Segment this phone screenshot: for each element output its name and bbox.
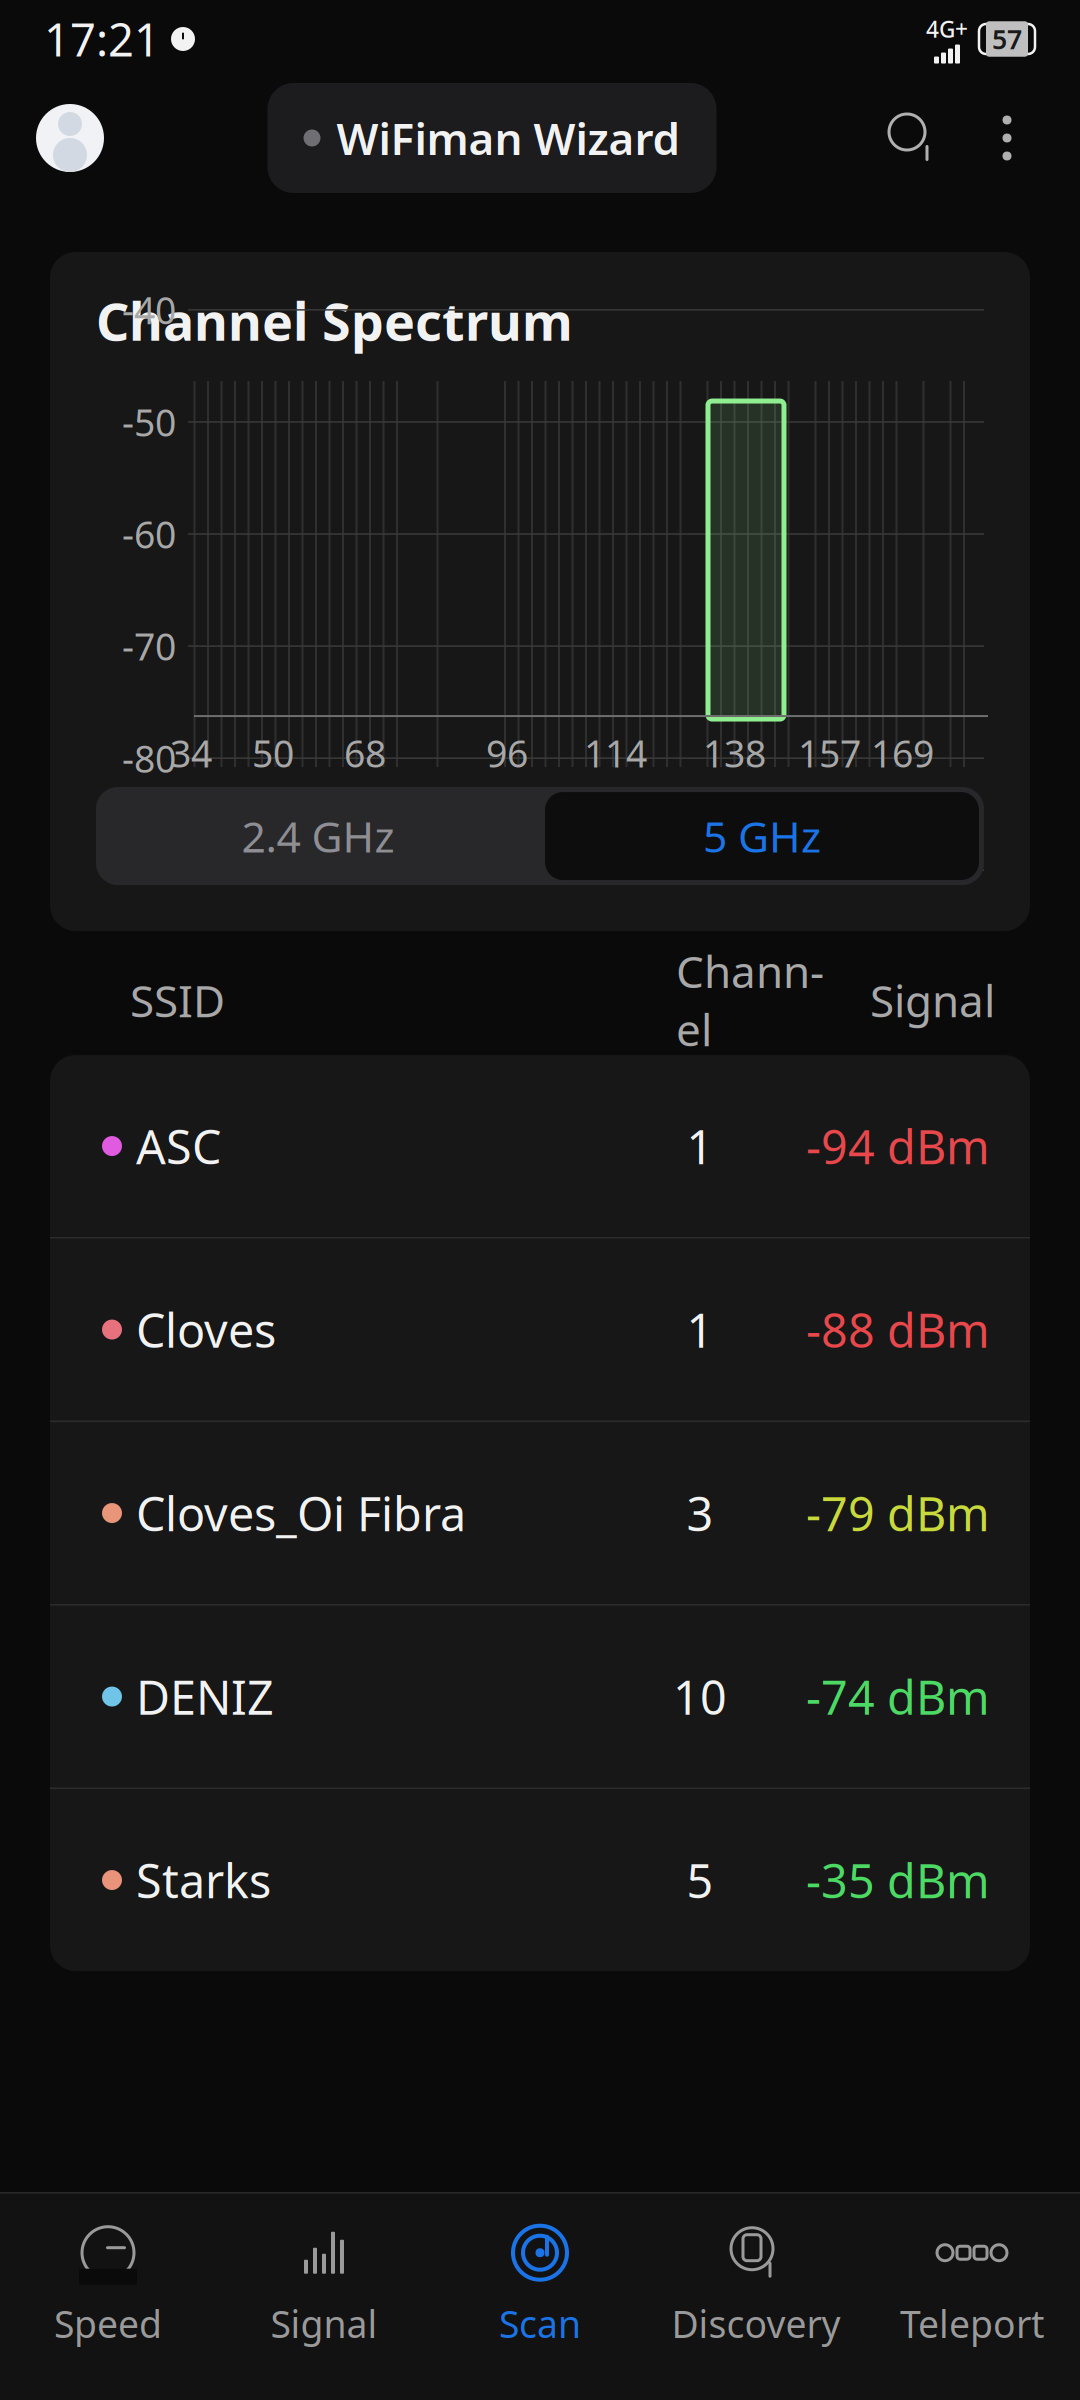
staticText: -50 — [122, 397, 176, 447]
staticText: -40 — [122, 285, 176, 335]
staticText: 57 — [992, 21, 1022, 57]
staticText: Starks — [136, 1849, 271, 1911]
staticText: -60 — [122, 509, 176, 559]
button[interactable]: DENIZ — [50, 1606, 1030, 1789]
button[interactable]: Search — [880, 105, 946, 171]
staticText: 5 — [686, 1849, 713, 1911]
staticText: -88 dBm — [806, 1299, 990, 1361]
button[interactable]: Cloves — [50, 1239, 1030, 1422]
staticText: 1 — [686, 1299, 713, 1361]
staticText: WiFiman Wizard — [336, 109, 680, 167]
staticText: 4G+ — [926, 14, 968, 44]
staticText: -94 dBm — [806, 1115, 990, 1177]
staticText: DENIZ — [136, 1666, 274, 1728]
staticText: -70 — [122, 621, 176, 671]
staticText: SSID — [130, 971, 225, 1029]
staticText: 50 — [252, 728, 294, 778]
staticText: -80 — [122, 733, 176, 783]
staticText: 68 — [344, 728, 386, 778]
staticText: Channel — [676, 942, 824, 1058]
staticText: Signal — [270, 2299, 377, 2348]
staticText: 169 — [871, 728, 934, 778]
staticText: -74 dBm — [806, 1666, 990, 1728]
staticText: Signal — [870, 971, 995, 1029]
staticText: Cloves — [136, 1299, 276, 1361]
button[interactable]: WiFiman Wizard — [267, 83, 716, 193]
button[interactable]: Cloves_Oi Fibra — [50, 1422, 1030, 1606]
button[interactable]: Scan — [432, 2209, 648, 2359]
staticText: 138 — [703, 728, 766, 778]
staticText: -35 dBm — [806, 1849, 990, 1911]
button[interactable]: Account — [36, 104, 104, 172]
button[interactable]: 2.4 GHz — [96, 792, 540, 880]
button[interactable]: Signal — [216, 2209, 432, 2359]
button[interactable]: 5 GHz — [545, 792, 979, 880]
staticText: Teleport — [900, 2299, 1044, 2348]
button[interactable]: More options — [946, 105, 1040, 171]
staticText: -79 dBm — [806, 1482, 990, 1544]
staticText: 10 — [673, 1666, 727, 1728]
staticText: Channel Spectrum — [96, 286, 573, 355]
staticText: 2.4 GHz — [241, 808, 394, 864]
staticText: 157 — [798, 728, 861, 778]
staticText: 17:21 — [44, 9, 160, 69]
staticText: 114 — [584, 728, 647, 778]
button[interactable]: ASC — [50, 1055, 1030, 1239]
staticText: 5 GHz — [703, 808, 821, 864]
button[interactable]: Starks — [50, 1789, 1030, 1971]
staticText: 1 — [686, 1115, 713, 1177]
staticText: Cloves_Oi Fibra — [136, 1482, 466, 1544]
staticText: Speed — [54, 2299, 162, 2348]
staticText: 3 — [686, 1482, 713, 1544]
staticText: ASC — [136, 1115, 221, 1177]
staticText: Scan — [499, 2299, 581, 2348]
staticText: 96 — [486, 728, 528, 778]
staticText: -90 — [122, 845, 176, 895]
staticText: Discovery — [671, 2299, 840, 2348]
button[interactable]: Speed — [0, 2209, 216, 2359]
button[interactable]: Teleport — [864, 2209, 1080, 2359]
staticText: 34 — [170, 728, 212, 778]
button[interactable]: Discovery — [648, 2209, 864, 2359]
